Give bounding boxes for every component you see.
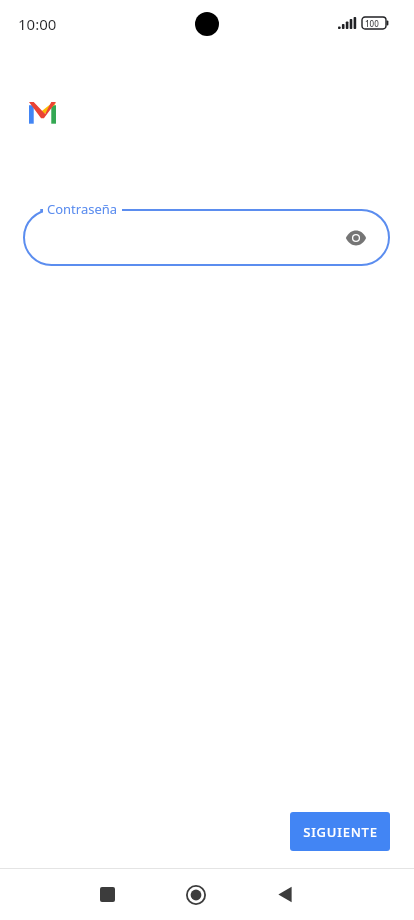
button[interactable]: Inicio — [167, 869, 225, 920]
staticText: SIGUIENTE — [303, 823, 378, 841]
button[interactable]: Recientes — [78, 869, 136, 920]
staticText: 100 — [365, 18, 379, 29]
button[interactable]: Mostrar contraseña — [336, 218, 376, 258]
button[interactable]: Contraseña — [23, 209, 390, 266]
button[interactable]: Atrás — [256, 869, 314, 920]
button[interactable]: SIGUIENTE — [290, 812, 390, 851]
staticText: 10:00 — [18, 14, 57, 34]
staticText: Contraseña — [47, 200, 118, 218]
